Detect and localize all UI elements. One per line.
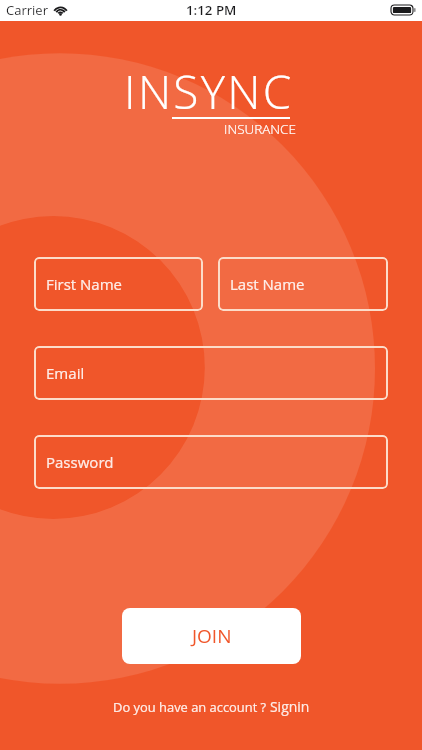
staticText: 1:12 PM xyxy=(186,1,237,19)
staticText: Password xyxy=(46,452,114,472)
staticText: First Name xyxy=(46,274,123,294)
button[interactable]: Email xyxy=(34,346,388,400)
button[interactable]: JOIN xyxy=(122,608,301,664)
staticText: Email xyxy=(46,363,85,383)
button[interactable]: Password xyxy=(34,435,388,489)
staticText: Do you have an account ? xyxy=(113,698,267,716)
button[interactable]: First Name xyxy=(34,257,203,311)
staticText: INSYNC xyxy=(124,60,294,123)
button[interactable]: Last Name xyxy=(218,257,388,311)
staticText: Last Name xyxy=(230,274,305,294)
staticText: INSURANCE xyxy=(224,120,296,138)
staticText: JOIN xyxy=(192,623,232,649)
staticText: Carrier xyxy=(6,1,48,19)
staticText: Signin xyxy=(270,697,310,716)
button[interactable]: Signin xyxy=(270,697,310,716)
